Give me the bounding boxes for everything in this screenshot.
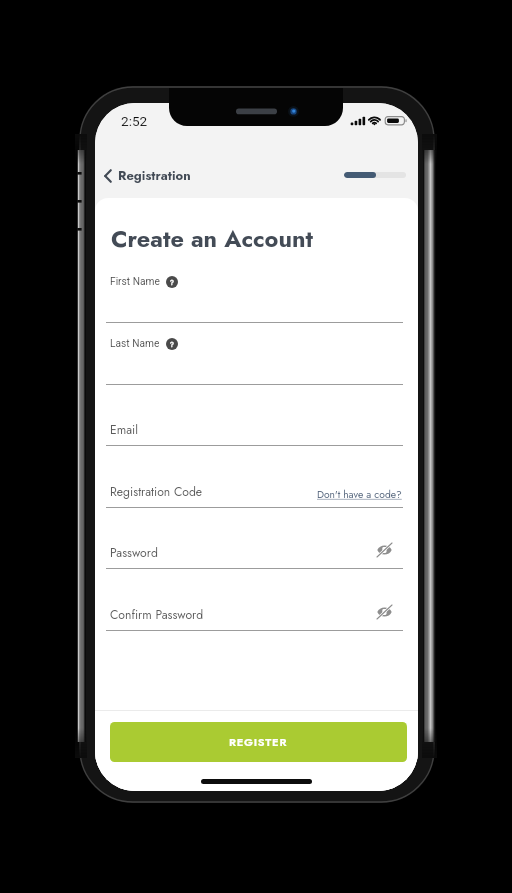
staticText: Confirm Password bbox=[110, 606, 204, 624]
staticText: Registration Code bbox=[110, 483, 203, 501]
staticText: Registration bbox=[118, 166, 191, 185]
staticText: ? bbox=[170, 278, 174, 287]
button[interactable]: Show password bbox=[374, 602, 394, 622]
button[interactable]: Show password bbox=[374, 540, 394, 560]
staticText: Last Name bbox=[110, 338, 160, 350]
staticText: Don't have a code? bbox=[317, 487, 402, 502]
button[interactable]: Back bbox=[96, 161, 119, 191]
staticText: Email bbox=[110, 421, 139, 439]
staticText: First Name bbox=[110, 276, 160, 288]
button[interactable]: Help bbox=[166, 338, 178, 350]
staticText: Password bbox=[110, 544, 158, 562]
staticText: 2:52 bbox=[121, 113, 148, 129]
button[interactable]: REGISTER bbox=[110, 722, 407, 762]
staticText: Create an Account bbox=[111, 222, 313, 256]
staticText: REGISTER bbox=[229, 734, 288, 750]
button[interactable]: Don't have a code? bbox=[317, 487, 402, 502]
button[interactable]: Help bbox=[166, 276, 178, 288]
staticText: ? bbox=[170, 340, 174, 349]
